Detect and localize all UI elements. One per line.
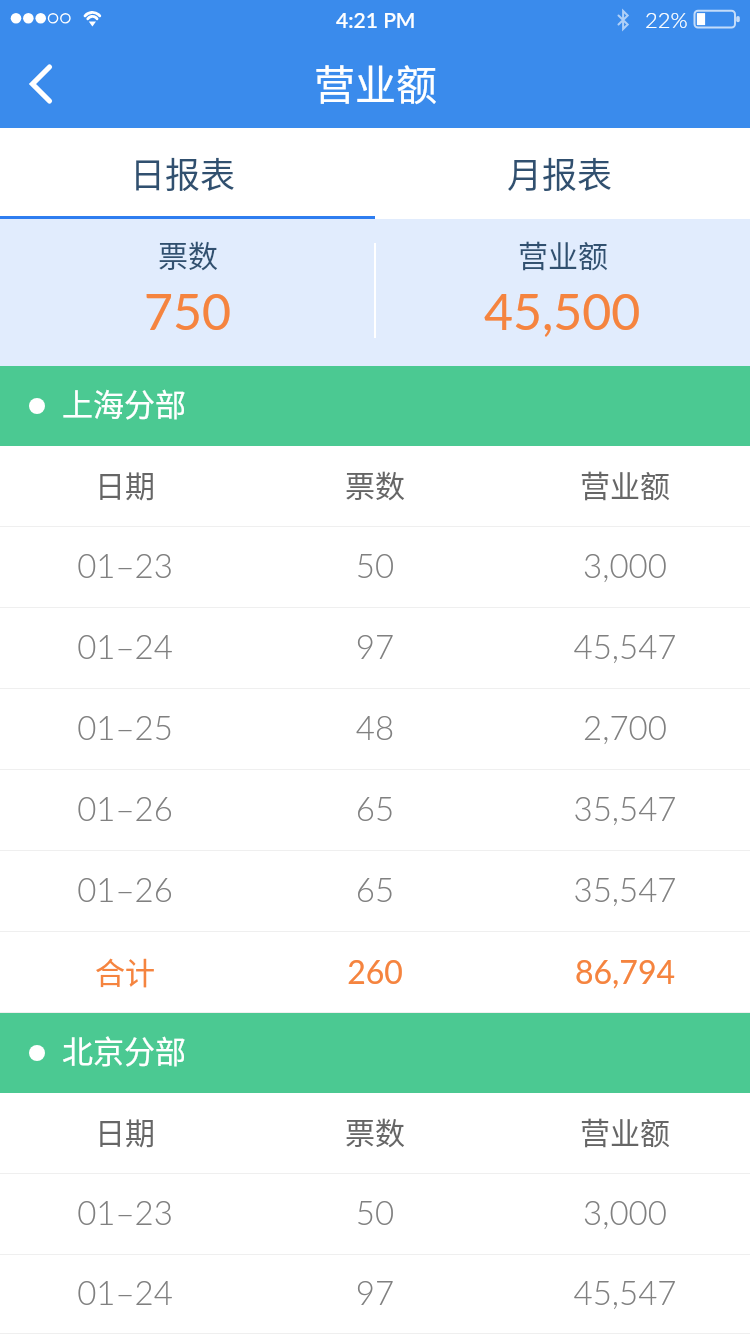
staticText: 48 <box>250 707 500 747</box>
staticText: 2,700 <box>500 707 750 747</box>
button[interactable]: 北京分部 <box>0 1013 750 1093</box>
button[interactable]: 合计 <box>0 932 750 1013</box>
staticText: 35,547 <box>500 788 750 828</box>
button[interactable]: 01–24 <box>0 1255 750 1334</box>
staticText: 日报表 <box>130 147 236 198</box>
staticText: 35,547 <box>500 869 750 909</box>
button[interactable]: 01–25 <box>0 689 750 770</box>
staticText: 50 <box>250 545 500 585</box>
staticText: 97 <box>250 1272 500 1312</box>
staticText: 45,547 <box>500 1272 750 1312</box>
staticText: 01–26 <box>0 869 250 909</box>
staticText: 营业额 <box>500 462 750 505</box>
staticText: 01–24 <box>0 1272 250 1312</box>
button[interactable]: 上海分部 <box>0 366 750 446</box>
button[interactable]: 01–26 <box>0 770 750 851</box>
button[interactable]: 营业额 <box>375 219 750 366</box>
staticText: 01–23 <box>0 545 250 585</box>
staticText: 月报表 <box>507 147 613 198</box>
button[interactable]: 月报表 <box>375 128 750 219</box>
staticText: 750 <box>144 281 232 341</box>
staticText: 01–25 <box>0 707 250 747</box>
staticText: 营业额 <box>518 232 608 275</box>
staticText: 3,000 <box>500 545 750 585</box>
button[interactable]: 日报表 <box>0 128 375 219</box>
staticText: 票数 <box>158 232 218 275</box>
staticText: 4:21 PM <box>336 7 416 32</box>
staticText: 260 <box>250 952 500 990</box>
button[interactable]: 01–24 <box>0 608 750 689</box>
staticText: 65 <box>250 788 500 828</box>
staticText: 票数 <box>250 462 500 505</box>
staticText: 北京分部 <box>62 1027 186 1072</box>
staticText: 97 <box>250 626 500 666</box>
staticText: 3,000 <box>500 1192 750 1232</box>
staticText: 45,547 <box>500 626 750 666</box>
button[interactable]: 01–23 <box>0 527 750 608</box>
staticText: 86,794 <box>500 952 750 990</box>
staticText: 营业额 <box>500 1109 750 1152</box>
staticText: 合计 <box>0 949 250 992</box>
button[interactable]: Back <box>0 40 76 128</box>
staticText: 营业额 <box>314 52 437 111</box>
staticText: 上海分部 <box>62 380 186 425</box>
button[interactable]: 票数 <box>0 219 375 366</box>
staticText: 65 <box>250 869 500 909</box>
staticText: 票数 <box>250 1109 500 1152</box>
staticText: 22% <box>645 6 688 32</box>
staticText: 01–24 <box>0 626 250 666</box>
staticText: 01–23 <box>0 1192 250 1232</box>
staticText: 日期 <box>0 462 250 505</box>
staticText: 日期 <box>0 1109 250 1152</box>
button[interactable]: 01–26 <box>0 851 750 932</box>
button[interactable]: 01–23 <box>0 1174 750 1255</box>
staticText: 45,500 <box>484 281 641 341</box>
staticText: 01–26 <box>0 788 250 828</box>
staticText: 50 <box>250 1192 500 1232</box>
